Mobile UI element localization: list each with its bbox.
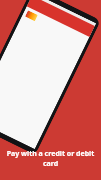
staticText: Pay with a credit or debit card	[0, 149, 101, 169]
